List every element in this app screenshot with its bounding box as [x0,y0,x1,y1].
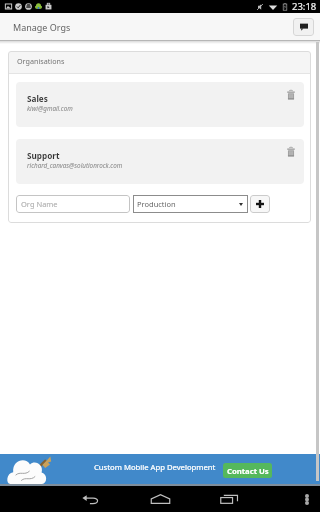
button[interactable]: Recent apps [216,486,242,512]
staticText: Production [137,199,176,209]
button[interactable]: Sales [16,82,304,127]
staticText: 23:18 [292,0,317,13]
staticText: Support [27,150,60,161]
button[interactable]: Production [133,195,248,213]
staticText: Custom Mobile App Development [94,462,216,472]
button[interactable]: Support [16,139,304,184]
button[interactable]: Add organisation [250,195,270,213]
staticText: Sales [27,93,48,104]
staticText: richard_canvas@solutionrock.com [27,161,123,170]
button[interactable]: Org Name [16,195,130,213]
button[interactable]: Delete [283,144,299,160]
staticText: Manage Orgs [13,21,71,33]
button[interactable]: Home [147,486,173,512]
button[interactable]: Back [78,486,104,512]
button[interactable]: Delete [283,87,299,103]
button[interactable]: Messages [293,18,314,36]
staticText: Organisations [17,56,65,66]
button[interactable]: Contact Us [223,463,272,478]
staticText: kiwi@gmail.com [27,104,73,113]
button[interactable]: More options [297,490,316,509]
staticText: Org Name [21,199,58,209]
staticText: Contact Us [227,466,269,476]
